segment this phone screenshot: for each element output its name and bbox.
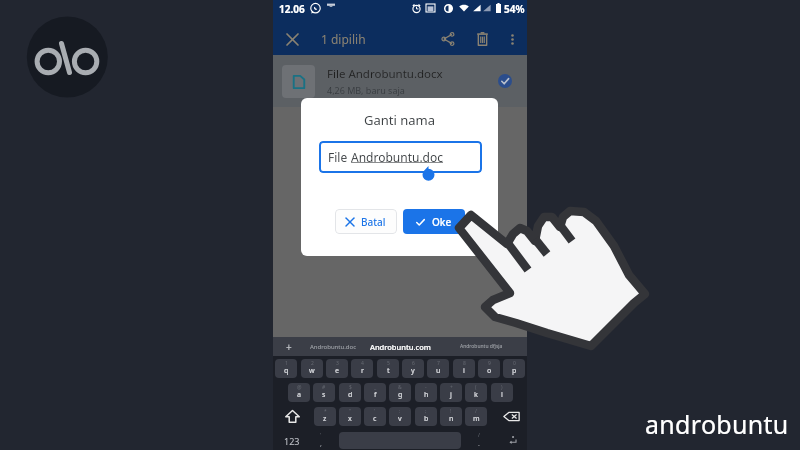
button[interactable]: Add [281,339,297,355]
staticText: 9 [488,360,491,367]
staticText: File Androbuntu.docx [327,66,443,82]
staticText: ' [374,408,376,415]
button[interactable]: 1 [275,359,297,378]
button[interactable]: 5 [377,359,399,378]
button[interactable]: Shift [277,407,307,426]
staticText: # [322,384,326,391]
button[interactable]: _ [364,383,386,402]
staticText: q [284,366,289,376]
button[interactable]: 0 [503,359,525,378]
staticText: / [475,408,477,415]
staticText: z [323,414,327,424]
staticText: ) [501,384,503,391]
button[interactable]: Enter [499,431,525,450]
staticText: / [478,432,480,439]
button[interactable]: Androbuntu.doc [310,343,357,351]
staticText: + [450,384,453,391]
staticText: 12.06 [279,2,305,16]
button[interactable]: ! [440,407,462,426]
button[interactable]: 4 [351,359,373,378]
button[interactable]: * [314,407,336,426]
button[interactable]: ; [415,407,437,426]
staticText: j [450,390,452,400]
staticText: androbuntu [645,407,789,441]
button[interactable]: ( [465,383,487,402]
staticText: , [320,439,322,449]
staticText: v [398,414,402,424]
button[interactable]: More options [498,25,526,53]
button[interactable]: 9 [478,359,500,378]
button[interactable]: / [469,431,489,450]
staticText: 54% [504,2,525,16]
button[interactable]: & [389,383,411,402]
button[interactable]: File [319,141,482,173]
button[interactable]: ' [311,431,331,450]
staticText: File [328,149,351,165]
staticText: u [436,366,441,376]
button[interactable]: / [465,407,487,426]
staticText: 3 [336,360,339,367]
button[interactable]: $ [339,383,361,402]
staticText: 123 [284,435,300,447]
staticText: 5 [387,360,390,367]
staticText: ( [475,384,477,391]
staticText: 4 [361,360,364,367]
staticText: @ [297,384,302,391]
staticText: & [398,384,402,391]
button[interactable]: Share [434,25,462,53]
button[interactable]: Close selection [278,25,306,53]
staticText: i [463,366,465,376]
staticText: f [374,390,377,400]
staticText: s [322,390,326,400]
staticText: o [487,366,492,376]
button[interactable]: " [339,407,361,426]
staticText: Androbuntu.doc [351,149,444,165]
button[interactable]: 6 [402,359,424,378]
button[interactable]: 8 [453,359,475,378]
staticText: k [474,390,478,400]
staticText: l [501,390,503,400]
button[interactable]: Delete [468,25,496,53]
staticText: * [324,408,327,415]
button[interactable]: 123 [275,431,308,450]
staticText: + [286,340,292,354]
button[interactable]: Oke [403,209,465,234]
staticText: w [309,366,315,376]
staticText: c [373,414,377,424]
staticText: d [348,390,353,400]
staticText: ! [450,408,452,415]
button[interactable]: + [440,383,462,402]
button[interactable]: - [415,383,437,402]
staticText: p [512,366,517,376]
button[interactable]: 7 [427,359,449,378]
button[interactable]: @ [288,383,310,402]
staticText: . [478,439,480,449]
staticText: t [387,366,390,376]
staticText: $ [349,384,352,391]
button[interactable]: : [389,407,411,426]
staticText: m [473,414,480,424]
staticText: 2 [311,360,314,367]
staticText: x [348,414,352,424]
staticText: b [424,414,429,424]
button[interactable]: 3 [326,359,348,378]
button[interactable]: ) [491,383,513,402]
button[interactable]: Batal [335,209,397,234]
staticText: 7 [437,360,440,367]
button[interactable]: # [313,383,335,402]
staticText: g [398,390,403,400]
button[interactable]: 2 [301,359,323,378]
button[interactable]: Androbuntu dfjsja [460,343,503,350]
button[interactable]: Androbuntu.com [370,342,431,352]
staticText: " [349,408,352,415]
staticText: : [399,408,401,415]
staticText: y [411,366,415,376]
button[interactable]: ' [364,407,386,426]
staticText: ' [320,432,322,439]
staticText: Batal [361,215,386,229]
staticText: n [449,414,454,424]
button[interactable]: Selected [493,69,517,93]
button[interactable]: Backspace [496,407,526,426]
staticText: r [361,366,364,376]
